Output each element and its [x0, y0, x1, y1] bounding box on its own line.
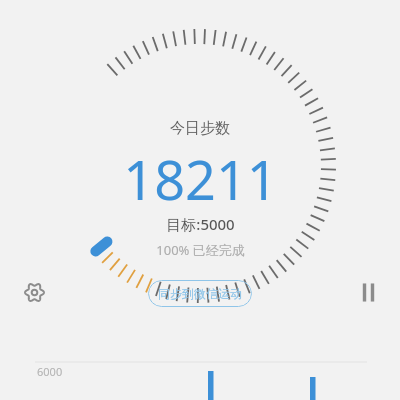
staticText: 100% 已经完成	[156, 241, 245, 259]
button[interactable]: Settings	[18, 276, 50, 308]
staticText: 6000	[37, 364, 63, 379]
staticText: 18211	[123, 142, 278, 216]
staticText: 今日步数	[170, 119, 230, 138]
staticText: 目标:5000	[166, 214, 235, 234]
staticText: 同步到微信运动	[158, 286, 242, 301]
button[interactable]: 同步到微信运动	[148, 280, 252, 307]
button[interactable]: Pause	[352, 276, 384, 308]
